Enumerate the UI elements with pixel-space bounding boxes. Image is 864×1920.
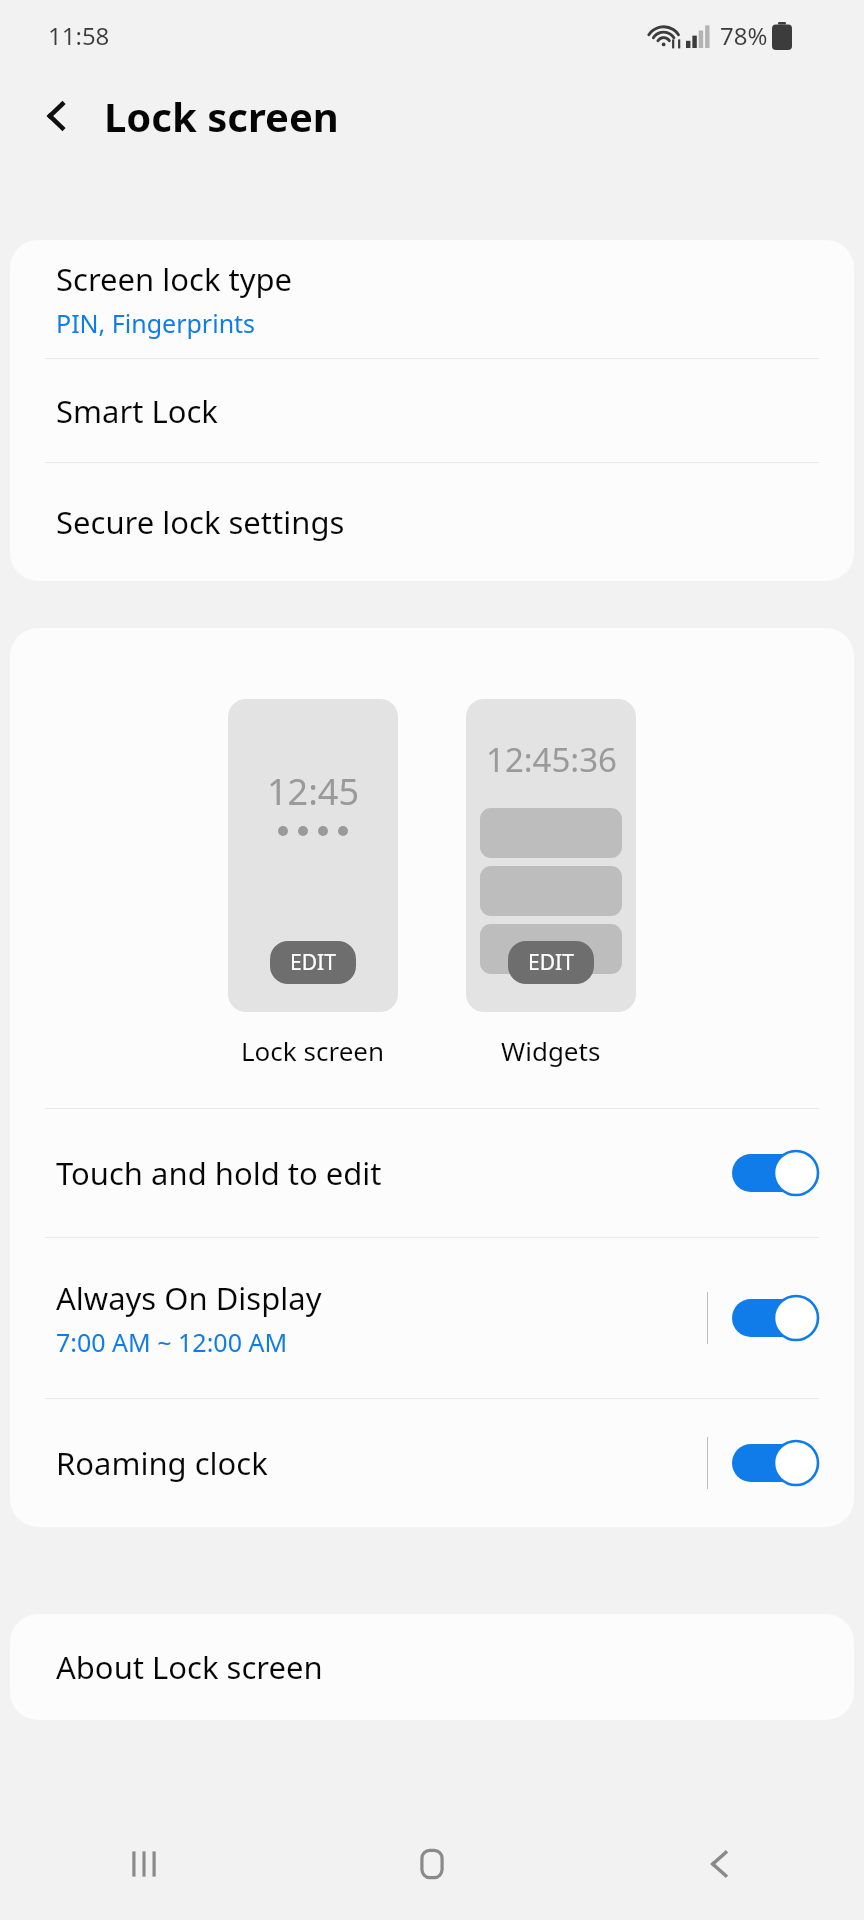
staticText: EDIT	[528, 948, 574, 977]
staticText: 12:45:36	[486, 737, 617, 782]
button[interactable]: Smart Lock	[10, 359, 854, 462]
button[interactable]: Home	[288, 1808, 576, 1920]
staticText: 11:58	[48, 19, 110, 52]
button[interactable]: Secure lock settings	[10, 463, 854, 581]
staticText: Always On Display	[56, 1277, 322, 1319]
button[interactable]: Edit widgets	[466, 699, 636, 1012]
staticText: Screen lock type	[56, 258, 293, 300]
staticText: 12:45	[267, 767, 360, 816]
button[interactable]: Always On Display	[10, 1238, 854, 1398]
button[interactable]: Back	[576, 1808, 864, 1920]
staticText: Roaming clock	[56, 1442, 268, 1484]
button[interactable]: Back	[26, 85, 88, 147]
button[interactable]: Toggle	[726, 1435, 822, 1491]
staticText: 78%	[720, 19, 768, 52]
button[interactable]: Toggle	[726, 1145, 822, 1201]
staticText: 7:00 AM ~ 12:00 AM	[56, 1325, 288, 1359]
button[interactable]: About Lock screen	[10, 1614, 854, 1720]
button[interactable]: Touch and hold to edit	[10, 1109, 854, 1237]
staticText: Secure lock settings	[56, 501, 345, 543]
staticText: About Lock screen	[56, 1646, 323, 1688]
button[interactable]: Recent apps	[0, 1808, 288, 1920]
staticText: Touch and hold to edit	[56, 1152, 382, 1194]
staticText: Lock screen	[241, 1033, 385, 1068]
staticText: Lock screen	[104, 89, 339, 143]
button[interactable]: Edit lock screen	[228, 699, 398, 1012]
button[interactable]: Screen lock type	[10, 240, 854, 358]
staticText: Widgets	[501, 1033, 601, 1068]
button[interactable]: Toggle	[726, 1290, 822, 1346]
staticText: PIN, Fingerprints	[56, 306, 256, 340]
staticText: EDIT	[290, 948, 336, 977]
button[interactable]: Roaming clock	[10, 1399, 854, 1527]
staticText: Smart Lock	[56, 390, 218, 432]
